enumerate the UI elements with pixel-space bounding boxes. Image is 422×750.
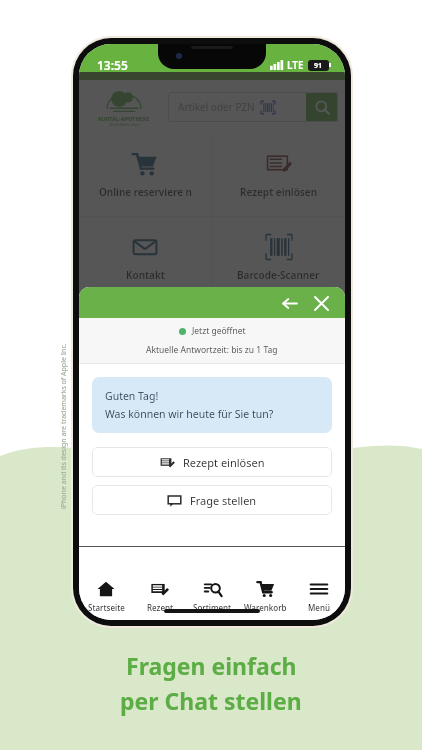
button[interactable]: Sortiment (186, 572, 239, 620)
button[interactable]: Frage stellen (92, 485, 332, 515)
button[interactable]: Warenkorb (239, 572, 292, 620)
staticText: Startseite (88, 602, 125, 613)
button[interactable]: Rezept einlösen (212, 134, 345, 216)
staticText: Kontakt (126, 268, 165, 282)
staticText: 91 (314, 61, 323, 71)
staticText: Gleich·Weiter·Gern (109, 122, 140, 127)
staticText: Notdienst (254, 351, 303, 365)
staticText: Aktuelle Antwortzeit: bis zu 1 Tag (146, 344, 278, 356)
other: Barcode (261, 101, 275, 114)
staticText: Rezept einlösen (183, 455, 265, 470)
staticText: Jetzt geöffnet (192, 325, 246, 337)
staticText: 13:55 (97, 57, 128, 73)
button[interactable]: Rezept einlösen (92, 447, 332, 477)
staticText: Fragen einfach (126, 650, 297, 681)
staticText: per Chat stellen (120, 685, 302, 716)
staticText: Öffnungszeiten (107, 351, 183, 365)
button[interactable]: Schließen (309, 291, 333, 315)
staticText: Menü (308, 602, 330, 613)
button[interactable]: Kontakt (79, 217, 211, 299)
staticText: Öffnungszeiten · 8:00 - 18:30 (89, 391, 199, 402)
staticText: Warenkorb (244, 602, 287, 613)
staticText: Sortiment (193, 602, 232, 613)
button[interactable]: Notdienst (212, 300, 345, 382)
staticText: Frage stellen (190, 493, 257, 508)
button[interactable]: Zurück (277, 291, 301, 315)
staticText: Artikel oder PZN (178, 100, 255, 114)
staticText: Guten Tag! (105, 389, 159, 403)
button[interactable]: Öffnungszeiten (79, 300, 211, 382)
button[interactable]: Menü (292, 572, 345, 620)
staticText: iPhone and its design are trademarks of … (59, 343, 69, 509)
staticText: Rezept (147, 602, 173, 613)
button[interactable]: Suchen (306, 92, 338, 122)
staticText: LTE (287, 58, 304, 72)
staticText: Online reserviere n (99, 185, 192, 199)
button[interactable]: Startseite (79, 572, 133, 620)
staticText: Telefon · 02422 / 1234 (251, 391, 335, 402)
staticText: Barcode-Scanner (237, 268, 320, 282)
staticText: RURTAL-APOTHEKE (98, 115, 150, 122)
staticText: Rezept einlösen (240, 185, 318, 199)
button[interactable]: Online reserviere n (79, 134, 211, 216)
button[interactable]: Rezept (133, 572, 186, 620)
button[interactable]: Artikel oder PZN (168, 92, 306, 122)
staticText: Was können wir heute für Sie tun? (105, 407, 274, 421)
button[interactable]: RURTAL-APOTHEKE (86, 88, 162, 127)
button[interactable]: Barcode-Scanner (212, 217, 345, 299)
